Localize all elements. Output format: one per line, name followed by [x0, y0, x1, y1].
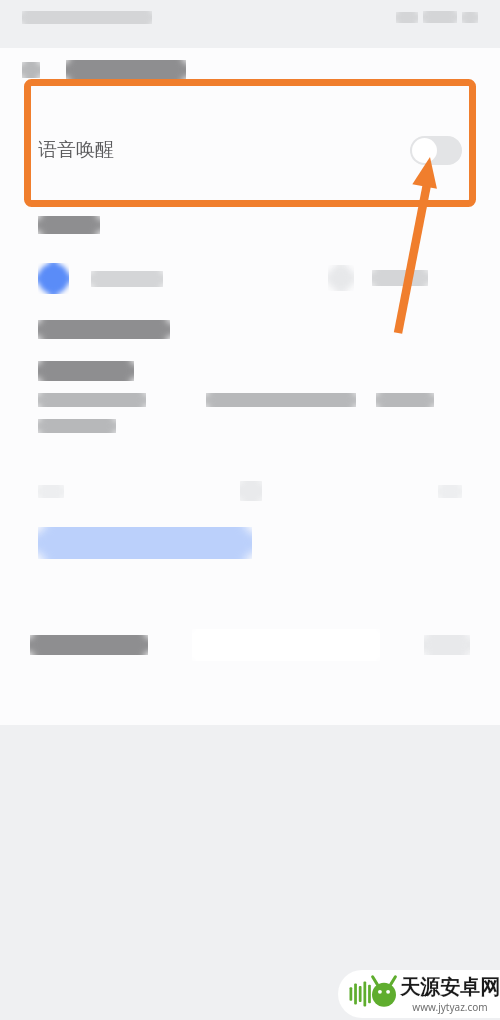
button[interactable]: Option one: [38, 263, 163, 294]
staticText: www.jytyaz.com: [412, 1000, 488, 1014]
button[interactable]: Highlighted item: [38, 527, 252, 559]
button[interactable]: 语音唤醒: [0, 92, 500, 208]
staticText: 天源安卓网: [400, 975, 500, 1000]
staticText: 语音唤醒: [38, 138, 114, 162]
button[interactable]: Option two: [328, 265, 428, 291]
button[interactable]: 语音唤醒 toggle: [410, 136, 462, 165]
